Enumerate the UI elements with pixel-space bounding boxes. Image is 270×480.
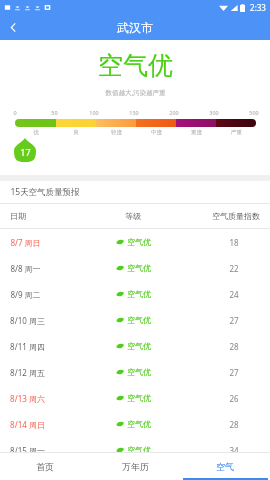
staticText: 空气优: [127, 263, 151, 273]
button[interactable]: 8/10 周三: [0, 307, 270, 333]
button[interactable]: 8/13 周六: [0, 385, 270, 411]
staticText: 万年历: [122, 461, 149, 472]
staticText: 中度: [151, 129, 162, 136]
button[interactable]: 8/15 周一: [0, 437, 270, 463]
staticText: 28: [229, 341, 239, 352]
staticText: 空气优: [127, 445, 151, 455]
staticText: 轻度: [111, 129, 122, 136]
staticText: 8/13 周六: [10, 393, 45, 404]
staticText: 等级: [125, 211, 141, 221]
staticText: 重度: [191, 129, 202, 136]
staticText: 2:33: [250, 2, 266, 13]
staticText: 27: [229, 367, 239, 378]
button[interactable]: 8/12 周五: [0, 359, 270, 385]
staticText: 8/14 周日: [10, 419, 45, 430]
staticText: 100: [89, 109, 99, 116]
staticText: 数值越大,污染越严重: [105, 88, 166, 97]
staticText: 日期: [10, 211, 26, 221]
staticText: 空气优: [127, 419, 151, 429]
staticText: 50: [51, 109, 58, 116]
staticText: 26: [229, 393, 239, 404]
staticText: 空气优: [127, 393, 151, 403]
staticText: 0: [13, 109, 17, 116]
staticText: 首页: [36, 461, 54, 472]
staticText: 28: [229, 419, 239, 430]
staticText: 空气优: [127, 341, 151, 351]
staticText: 严重: [231, 129, 242, 136]
staticText: 空气优: [127, 289, 151, 299]
button[interactable]: 空气: [180, 453, 270, 480]
staticText: 8/10 周三: [10, 315, 45, 326]
staticText: 空气优: [127, 367, 151, 377]
staticText: 34: [229, 445, 239, 456]
button[interactable]: 首页: [0, 453, 90, 480]
staticText: 8/9 周二: [10, 289, 41, 300]
staticText: 空气优: [127, 315, 151, 325]
staticText: 15天空气质量预报: [10, 186, 80, 198]
staticText: 空气质量指数: [212, 211, 260, 221]
staticText: 良: [73, 129, 79, 136]
staticText: 8/7 周日: [10, 237, 41, 248]
staticText: 空气: [216, 461, 234, 472]
button[interactable]: 8/9 周二: [0, 281, 270, 307]
staticText: 27: [229, 315, 239, 326]
staticText: 17: [20, 146, 31, 158]
staticText: 8/12 周五: [10, 367, 45, 378]
button[interactable]: 8/11 周四: [0, 333, 270, 359]
staticText: 空气优: [98, 50, 173, 81]
button[interactable]: 8/7 周日: [0, 229, 270, 255]
button[interactable]: Back: [0, 14, 26, 40]
staticText: 18: [229, 237, 239, 248]
staticText: 8/8 周一: [10, 263, 41, 274]
staticText: 武汉市: [117, 20, 153, 35]
button[interactable]: 8/8 周一: [0, 255, 270, 281]
staticText: 24: [229, 289, 239, 300]
button[interactable]: 万年历: [90, 453, 180, 480]
staticText: 优: [33, 129, 39, 136]
staticText: 8/11 周四: [10, 341, 45, 352]
staticText: 150: [129, 109, 139, 116]
staticText: 200: [169, 109, 179, 116]
button[interactable]: 8/14 周日: [0, 411, 270, 437]
staticText: 空气优: [127, 237, 151, 247]
staticText: 300: [209, 109, 219, 116]
staticText: 22: [229, 263, 239, 274]
staticText: 8/15 周一: [10, 445, 45, 456]
staticText: 500: [249, 109, 259, 116]
